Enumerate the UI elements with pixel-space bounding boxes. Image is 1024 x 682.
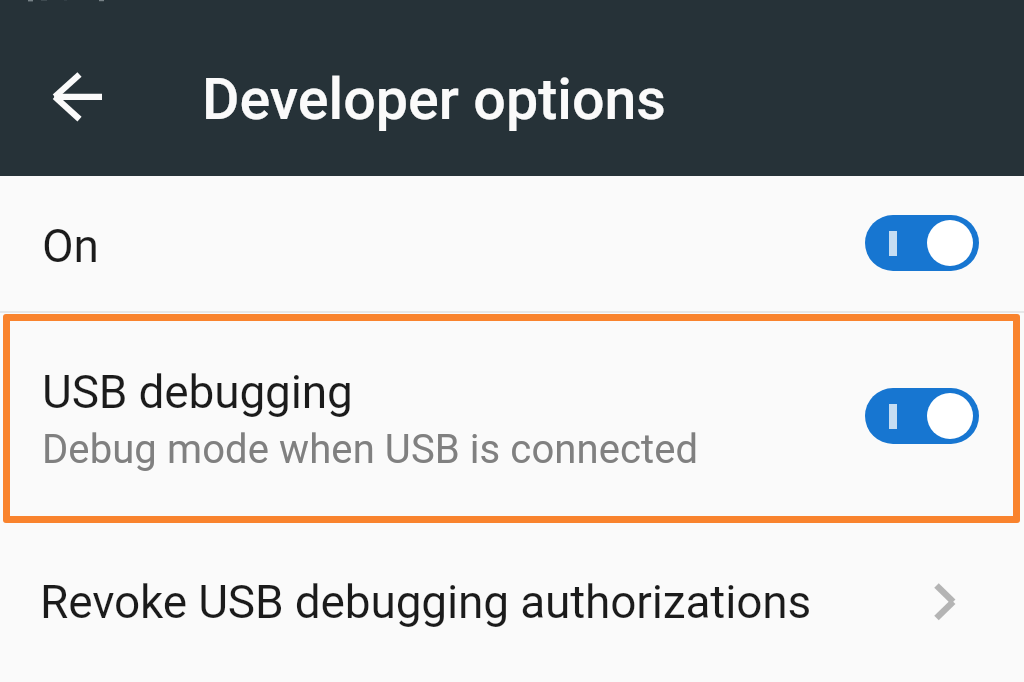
button[interactable]: Navigate up — [31, 49, 127, 145]
staticText: Debug mode when USB is connected — [42, 426, 699, 473]
button[interactable]: Switch, on — [865, 215, 979, 271]
staticText: USB debugging — [42, 365, 353, 419]
staticText: On — [42, 219, 99, 273]
staticText: Developer options — [202, 66, 666, 133]
staticText: Revoke USB debugging authorizations — [40, 575, 812, 629]
button[interactable]: On — [0, 176, 1024, 312]
button[interactable]: Revoke USB debugging authorizations — [0, 523, 1024, 682]
button[interactable]: USB debugging — [10, 321, 1013, 516]
button[interactable]: Switch, on — [865, 388, 979, 444]
